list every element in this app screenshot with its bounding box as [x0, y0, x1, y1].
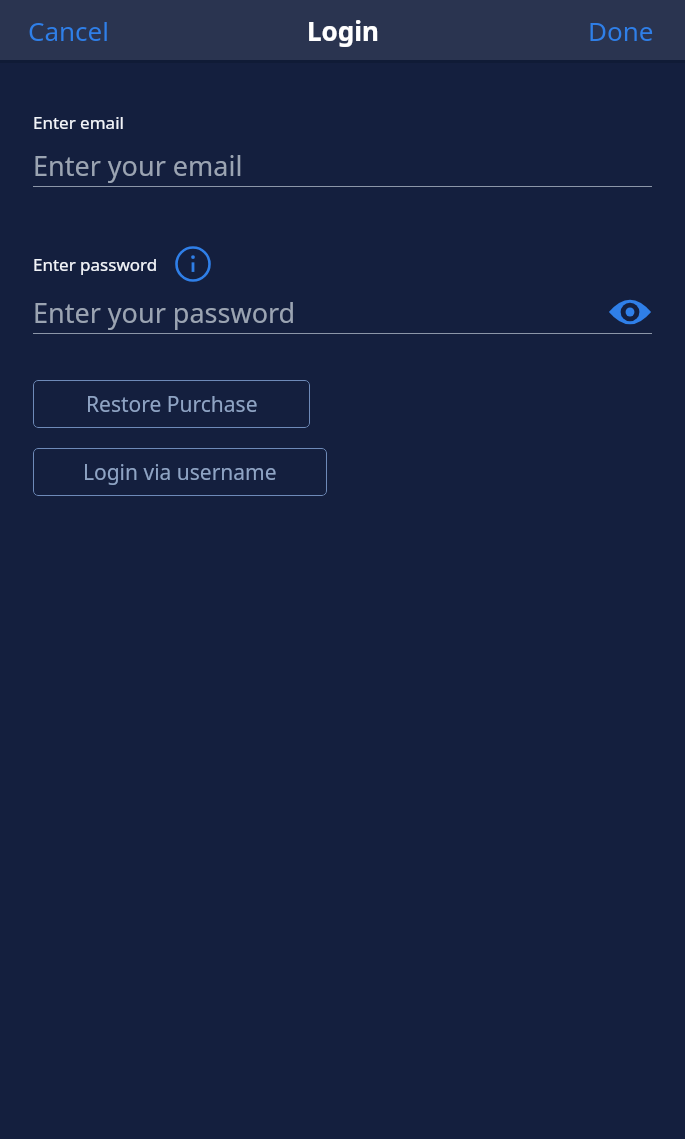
staticText: Restore Purchase [86, 390, 258, 419]
staticText: Cancel [28, 13, 109, 48]
button[interactable]: Done [578, 7, 664, 54]
staticText: Login via username [83, 458, 277, 487]
button[interactable]: Enter your password [33, 291, 652, 333]
button[interactable]: Enter your email [33, 144, 652, 186]
button[interactable]: Show password [608, 295, 652, 329]
staticText: Enter email [33, 111, 124, 134]
staticText: Done [588, 13, 654, 48]
button[interactable]: Password information [174, 245, 212, 283]
button[interactable]: Login via username [33, 448, 327, 496]
staticText: Enter your password [33, 294, 296, 331]
button[interactable]: Restore Purchase [33, 380, 310, 428]
staticText: Enter password [33, 253, 158, 276]
button[interactable]: Cancel [18, 7, 119, 54]
staticText: Login [307, 13, 379, 48]
staticText: Enter your email [33, 147, 243, 184]
